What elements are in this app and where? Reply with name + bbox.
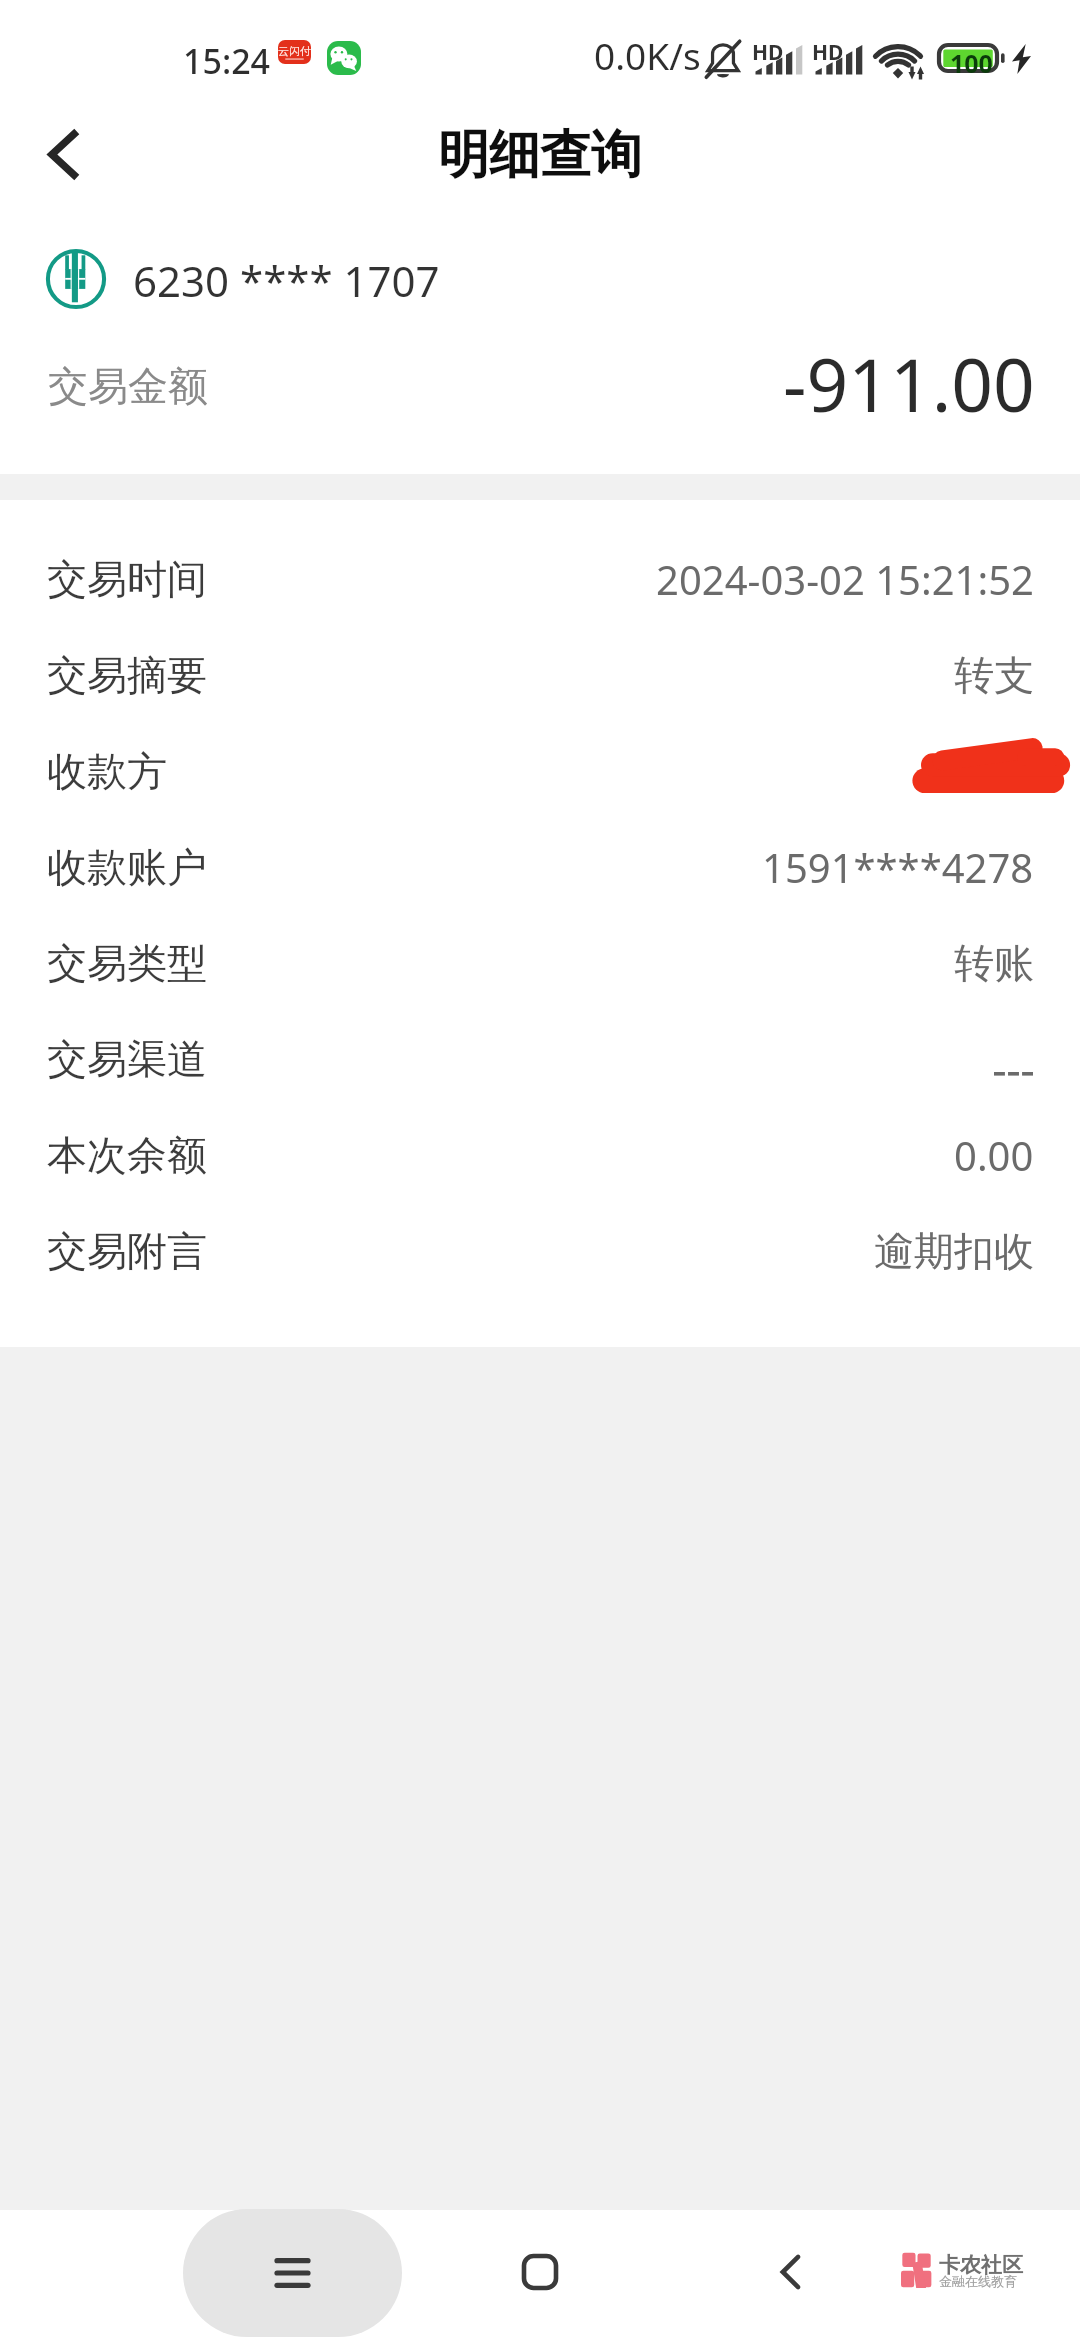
staticText: 金融在线教育 — [939, 2273, 1017, 2289]
staticText: 交易时间 — [47, 554, 207, 604]
staticText: 交易金额 — [48, 361, 208, 411]
button[interactable]: 交易渠道 — [0, 1011, 1080, 1107]
staticText: 云闪付 — [278, 44, 311, 58]
staticText: 卡农社区 — [939, 2252, 1023, 2278]
staticText: 本次余额 — [47, 1130, 207, 1180]
button[interactable]: 交易类型 — [0, 915, 1080, 1011]
staticText: 0.00 — [954, 1128, 1034, 1182]
button[interactable]: Home — [495, 2227, 585, 2317]
staticText: -911.00 — [783, 334, 1035, 433]
staticText: 逾期扣收 — [874, 1226, 1034, 1276]
button[interactable]: 收款账户 — [0, 819, 1080, 915]
button[interactable]: Back — [745, 2227, 835, 2317]
button[interactable]: 交易摘要 — [0, 627, 1080, 723]
staticText: 交易类型 — [47, 938, 207, 988]
staticText: HD — [752, 38, 784, 67]
staticText: 转账 — [954, 938, 1034, 988]
staticText: 交易附言 — [47, 1226, 207, 1276]
staticText: 100 — [950, 46, 993, 76]
staticText: 收款方 — [47, 746, 167, 796]
staticText: 收款账户 — [47, 842, 207, 892]
button[interactable]: Recent apps — [183, 2209, 402, 2337]
staticText: 交易摘要 — [47, 650, 207, 700]
staticText: 2024-03-02 15:21:52 — [656, 552, 1034, 606]
staticText: 0.0K/s — [594, 30, 701, 80]
staticText: HD — [812, 38, 844, 67]
staticText: 交易渠道 — [47, 1034, 207, 1084]
button[interactable]: 本次余额 — [0, 1107, 1080, 1203]
staticText: 1591****4278 — [762, 840, 1034, 894]
button[interactable]: 交易时间 — [0, 531, 1080, 627]
staticText: 明细查询 — [438, 123, 642, 187]
staticText: 转支 — [954, 650, 1034, 700]
staticText: 15:24 — [183, 38, 271, 84]
button[interactable]: 收款方 — [0, 723, 1080, 819]
button[interactable]: Back — [4, 104, 124, 204]
button[interactable]: 交易附言 — [0, 1203, 1080, 1299]
staticText: 6230 **** 1707 — [133, 252, 440, 309]
